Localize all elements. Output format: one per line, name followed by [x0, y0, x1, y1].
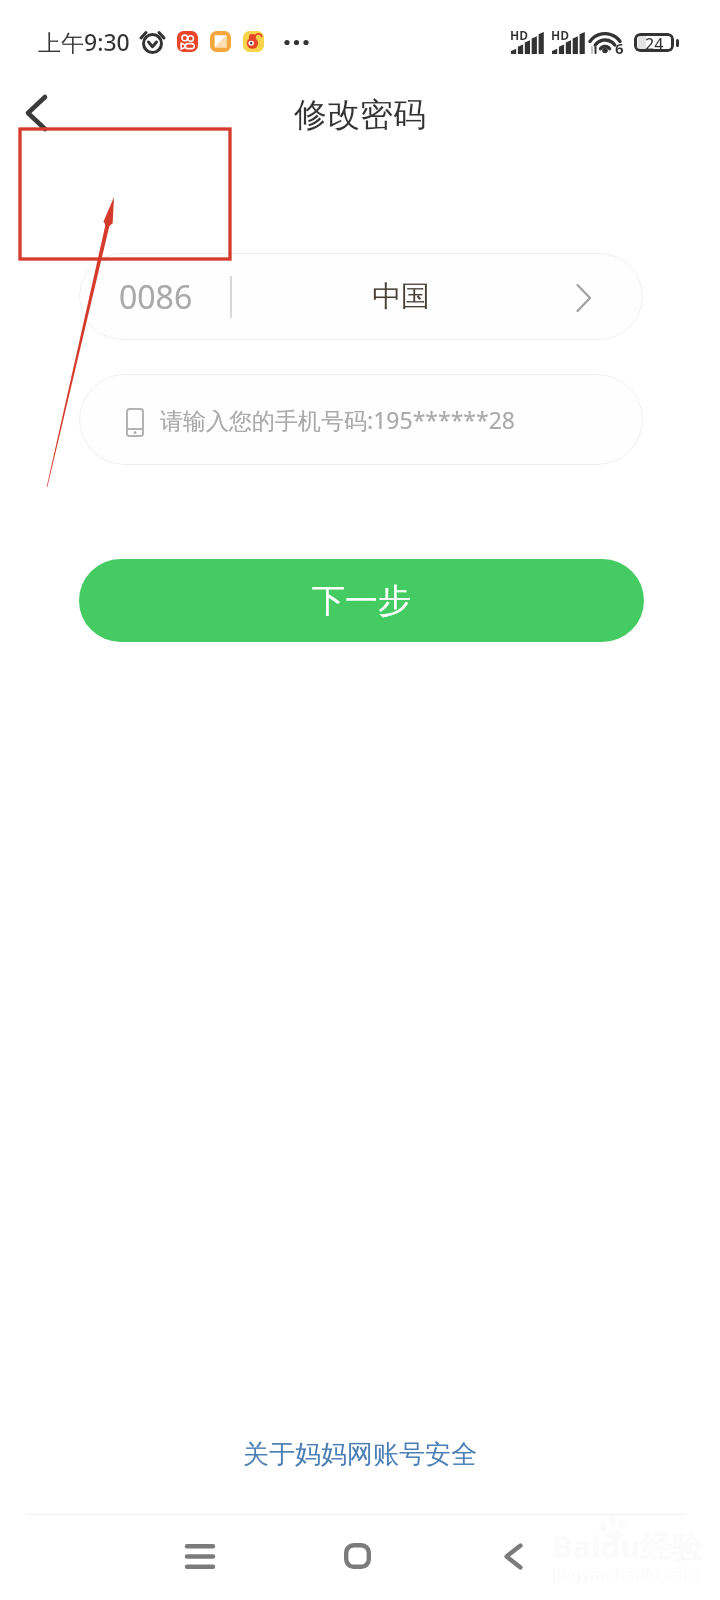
- staticText: 请输入您的手机号码:195******28: [160, 404, 515, 435]
- staticText: 下一步: [312, 580, 411, 622]
- staticText: 24: [645, 33, 664, 52]
- button[interactable]: 返回: [4, 83, 68, 145]
- button[interactable]: 请输入您的手机号码:195******28: [79, 374, 643, 465]
- button[interactable]: 关于妈妈网账号安全: [0, 1424, 720, 1484]
- button[interactable]: 下一步: [79, 559, 644, 642]
- staticText: 上午9:30: [38, 26, 130, 57]
- button[interactable]: Home: [317, 1516, 397, 1596]
- button[interactable]: Recent apps: [160, 1516, 240, 1596]
- staticText: 中国: [372, 278, 430, 315]
- staticText: HD: [551, 27, 569, 43]
- button[interactable]: Back: [473, 1516, 553, 1596]
- button[interactable]: 0086: [79, 253, 643, 340]
- staticText: 修改密码: [294, 94, 426, 136]
- staticText: HD: [510, 27, 528, 43]
- staticText: 6: [615, 38, 624, 58]
- staticText: 0086: [119, 275, 193, 319]
- staticText: 关于妈妈网账号安全: [243, 1438, 477, 1471]
